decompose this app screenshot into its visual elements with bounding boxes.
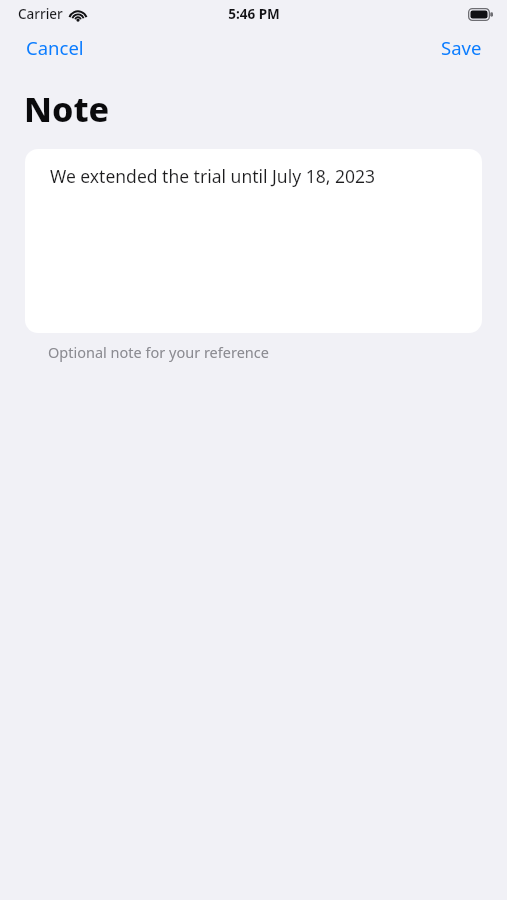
button[interactable]: Cancel xyxy=(0,29,110,66)
staticText: 5:46 PM xyxy=(228,5,280,23)
staticText: Optional note for your reference xyxy=(48,342,269,362)
staticText: Save xyxy=(441,35,482,60)
button[interactable]: Save xyxy=(416,29,507,66)
staticText: We extended the trial until July 18, 202… xyxy=(50,164,375,188)
staticText: Cancel xyxy=(26,35,84,60)
button[interactable]: We extended the trial until July 18, 202… xyxy=(25,149,482,333)
staticText: Note xyxy=(24,86,110,132)
staticText: Carrier xyxy=(18,5,63,23)
